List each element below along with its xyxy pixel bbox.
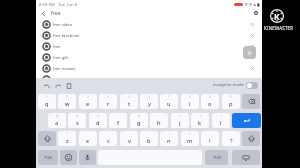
- staticText: free text: [53, 77, 70, 83]
- staticText: 0: [230, 95, 232, 99]
- staticText: free video: [53, 22, 73, 28]
- button[interactable]: Enter: [232, 113, 261, 128]
- staticText: ?123: [213, 155, 221, 160]
- staticText: *: [66, 132, 68, 136]
- button[interactable]: ?123: [38, 150, 58, 165]
- staticText: 7: [168, 95, 170, 99]
- button[interactable]: :: [120, 131, 138, 146]
- button[interactable]: @: [48, 113, 66, 128]
- button[interactable]: Shift: [242, 131, 260, 146]
- button[interactable]: ,: [201, 131, 219, 146]
- staticText: @: [56, 114, 59, 118]
- staticText: free movies: [53, 66, 76, 72]
- button[interactable]: Backspace: [242, 94, 260, 109]
- staticText: ?: [230, 137, 233, 145]
- staticText: 2: [66, 95, 68, 99]
- staticText: n: [167, 137, 171, 145]
- button[interactable]: free text: [36, 74, 262, 85]
- staticText: _: [117, 114, 119, 118]
- button[interactable]: Mic: [79, 150, 96, 165]
- button[interactable]: -: [150, 113, 168, 128]
- staticText: ,: [210, 132, 211, 136]
- staticText: p: [229, 100, 233, 108]
- staticText: e: [86, 100, 90, 108]
- button[interactable]: Accessibility button: [243, 46, 256, 59]
- staticText: x: [86, 137, 90, 145]
- button[interactable]: ): [212, 113, 230, 128]
- button[interactable]: Remove suggestion: [248, 31, 257, 40]
- staticText: v: [128, 137, 131, 145]
- button[interactable]: Remove suggestion: [248, 53, 257, 62]
- button[interactable]: free movies: [36, 63, 262, 74]
- button[interactable]: 9: [201, 94, 219, 109]
- button[interactable]: (: [191, 113, 209, 128]
- button[interactable]: Emoji: [60, 150, 77, 165]
- button[interactable]: $: [89, 113, 107, 128]
- button[interactable]: ;: [140, 131, 158, 146]
- button[interactable]: #: [68, 113, 86, 128]
- button[interactable]: Redo: [53, 81, 62, 90]
- button[interactable]: free video: [36, 19, 262, 30]
- staticText: u: [167, 100, 171, 108]
- staticText: f: [117, 119, 119, 127]
- button[interactable]: &: [130, 113, 148, 128]
- staticText: 5: [128, 95, 130, 99]
- staticText: .: [231, 132, 232, 136]
- button[interactable]: 8: [181, 94, 199, 109]
- button[interactable]: Incognito mode toggle: [246, 82, 258, 89]
- staticText: y: [148, 100, 151, 108]
- staticText: l: [220, 119, 222, 127]
- button[interactable]: ": [79, 131, 97, 146]
- button[interactable]: 2: [58, 94, 76, 109]
- button[interactable]: 6: [140, 94, 158, 109]
- staticText: KINEMASTER: [264, 25, 294, 31]
- staticText: 6: [148, 95, 150, 99]
- button[interactable]: Remove suggestion: [248, 42, 257, 51]
- button[interactable]: 3: [79, 94, 97, 109]
- staticText: d: [96, 119, 100, 127]
- button[interactable]: 1: [38, 94, 56, 109]
- button[interactable]: Undo: [42, 81, 51, 90]
- button[interactable]: Back: [38, 8, 48, 18]
- staticText: c: [107, 137, 110, 145]
- button[interactable]: Clipboard: [64, 81, 73, 90]
- button[interactable]: HideKb: [232, 150, 260, 165]
- staticText: incognito mode: [213, 82, 244, 88]
- button[interactable]: Shift: [38, 131, 56, 146]
- staticText: 4: [107, 95, 109, 99]
- button[interactable]: .: [222, 131, 240, 146]
- button[interactable]: 7: [160, 94, 178, 109]
- staticText: t: [128, 100, 131, 108]
- button[interactable]: free: [36, 41, 262, 52]
- button[interactable]: Remove suggestion: [248, 75, 257, 84]
- staticText: ;: [149, 132, 150, 136]
- button[interactable]: Clear query: [251, 8, 260, 17]
- button[interactable]: +: [171, 113, 189, 128]
- staticText: free: [51, 9, 61, 16]
- staticText: :: [129, 132, 130, 136]
- button[interactable]: 4: [99, 94, 117, 109]
- button[interactable]: _: [109, 113, 127, 128]
- button[interactable]: !: [160, 131, 178, 146]
- staticText: (: [200, 114, 201, 118]
- staticText: +: [179, 114, 181, 118]
- staticText: ?: [189, 132, 191, 136]
- staticText: &: [138, 114, 141, 118]
- staticText: free facebook: [53, 33, 80, 39]
- button[interactable]: Remove suggestion: [248, 20, 257, 29]
- button[interactable]: 5: [120, 94, 138, 109]
- button[interactable]: free gift: [36, 52, 262, 63]
- button[interactable]: Remove suggestion: [248, 64, 257, 73]
- staticText: q: [45, 100, 49, 108]
- button[interactable]: *: [58, 131, 76, 146]
- button[interactable]: ': [99, 131, 117, 146]
- button[interactable]: free facebook: [36, 30, 262, 41]
- staticText: ): [221, 114, 222, 118]
- staticText: r: [107, 100, 110, 108]
- button[interactable]: ?123: [205, 150, 228, 165]
- button[interactable]: ?: [181, 131, 199, 146]
- button[interactable]: 0: [222, 94, 240, 109]
- staticText: i: [189, 100, 191, 108]
- staticText: !: [209, 137, 211, 145]
